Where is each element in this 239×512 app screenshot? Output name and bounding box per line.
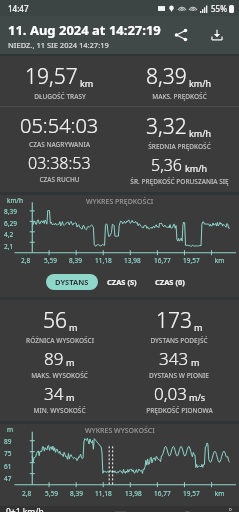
staticText: CZAS RUCHU bbox=[39, 175, 80, 184]
staticText: 03:38:53 bbox=[28, 152, 91, 174]
staticText: 05:54:03 bbox=[20, 112, 99, 139]
staticText: km/h bbox=[189, 77, 212, 89]
staticText: 55% bbox=[211, 3, 227, 14]
staticText: 16,77 bbox=[154, 489, 171, 498]
staticText: DŁUGOŚĆ TRASY bbox=[34, 92, 86, 101]
staticText: 8,39 bbox=[146, 62, 187, 91]
button[interactable]: Share bbox=[167, 21, 195, 49]
staticText: WYKRES WYSOKOŚCI bbox=[85, 426, 155, 436]
staticText: m bbox=[66, 391, 75, 403]
staticText: 8,39 bbox=[4, 207, 17, 216]
staticText: ŚR. PRĘDKOŚĆ PORUSZANIA SIĘ bbox=[130, 177, 229, 186]
staticText: --,-° bbox=[218, 506, 233, 512]
button[interactable]: Download bbox=[203, 21, 231, 49]
staticText: m bbox=[194, 321, 203, 333]
staticText: MIN. WYSOKOŚĆ bbox=[33, 406, 86, 415]
staticText: 8,39 bbox=[70, 489, 83, 498]
staticText: 14:47 bbox=[8, 3, 29, 14]
staticText: 4,2 bbox=[4, 230, 14, 239]
staticText: MAKS. PRĘDKOŚĆ bbox=[152, 92, 207, 101]
staticText: 2,8 bbox=[22, 489, 32, 498]
staticText: 5,59 bbox=[44, 256, 57, 265]
staticText: km/h bbox=[189, 127, 212, 139]
staticText: 11,18 bbox=[95, 256, 112, 265]
staticText: DYSTANS PODEJŚĆ bbox=[150, 336, 208, 345]
staticText: DYSTANS bbox=[55, 277, 89, 287]
staticText: km bbox=[213, 489, 225, 498]
staticText: 13,98 bbox=[125, 489, 142, 498]
staticText: CZAS NAGRYWANIA bbox=[29, 140, 90, 149]
staticText: NIEDZ., 11 SIE 2024 14:27:19 bbox=[8, 40, 109, 50]
staticText: CZAS (S) bbox=[107, 277, 137, 287]
button[interactable]: CZAS (0) bbox=[146, 274, 194, 290]
staticText: 89 bbox=[4, 437, 12, 446]
staticText: DYSTANS W PIONIE bbox=[149, 371, 209, 380]
staticText: 3,32 bbox=[146, 112, 187, 141]
staticText: 19,57 bbox=[25, 62, 78, 91]
staticText: 0,03 bbox=[154, 382, 187, 405]
staticText: 19,57 bbox=[183, 256, 200, 265]
staticText: 47 bbox=[4, 474, 12, 483]
staticText: 2,1 bbox=[4, 242, 14, 251]
staticText: 13,98 bbox=[124, 256, 141, 265]
staticText: 2,8 bbox=[21, 256, 31, 265]
button[interactable]: DYSTANS bbox=[46, 274, 98, 290]
staticText: 0±1 km/h bbox=[6, 506, 44, 512]
staticText: ŚREDNIA PRĘDKOŚĆ bbox=[148, 142, 211, 151]
staticText: 343 bbox=[159, 347, 189, 370]
staticText: km/h bbox=[7, 196, 23, 205]
staticText: m bbox=[191, 356, 200, 368]
staticText: 56 bbox=[43, 306, 67, 335]
staticText: 89 bbox=[44, 347, 64, 370]
staticText: RÓŻNICA WYSOKOŚCI bbox=[26, 336, 94, 345]
staticText: km bbox=[213, 256, 225, 265]
button[interactable]: CZAS (S) bbox=[98, 274, 146, 290]
staticText: 19,57 bbox=[183, 489, 200, 498]
staticText: m bbox=[66, 356, 75, 368]
staticText: WYKRES PRĘDKOŚCI bbox=[86, 197, 154, 207]
staticText: km bbox=[80, 77, 94, 89]
staticText: PRĘDKOŚĆ PIONOWA bbox=[146, 406, 213, 415]
staticText: 173 bbox=[156, 306, 192, 335]
staticText: 11,18 bbox=[95, 489, 112, 498]
staticText: 61 bbox=[4, 462, 12, 471]
staticText: km/h bbox=[185, 162, 208, 174]
staticText: 11. Aug 2024 at 14:27:19 bbox=[8, 21, 161, 39]
staticText: 75 bbox=[4, 449, 12, 458]
staticText: m bbox=[7, 425, 14, 434]
staticText: 8,39 bbox=[69, 256, 82, 265]
staticText: m/s bbox=[189, 391, 206, 403]
staticText: m bbox=[69, 321, 78, 333]
staticText: MAKS. WYSOKOŚĆ bbox=[31, 371, 88, 380]
staticText: 6,29 bbox=[4, 219, 17, 228]
staticText: 16,77 bbox=[154, 256, 171, 265]
staticText: CZAS (0) bbox=[155, 277, 185, 287]
staticText: 5,36 bbox=[151, 154, 183, 176]
staticText: 34 bbox=[44, 382, 64, 405]
staticText: 5,59 bbox=[45, 489, 58, 498]
